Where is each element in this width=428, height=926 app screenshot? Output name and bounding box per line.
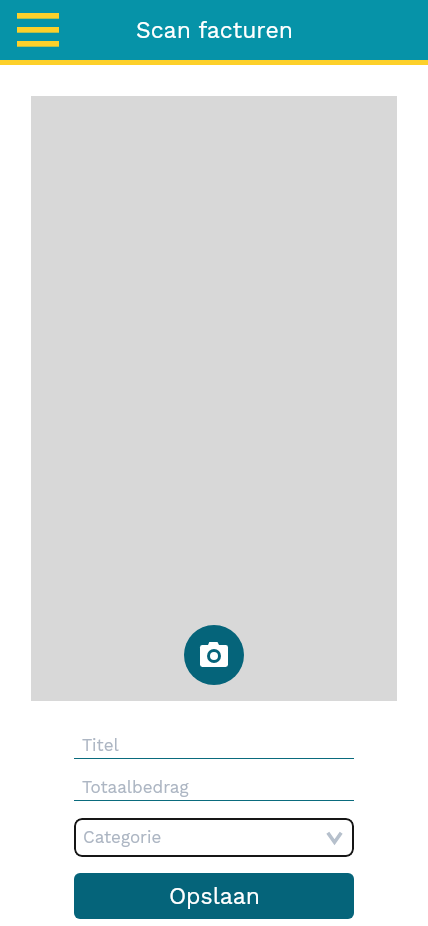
button[interactable]: Menu: [7, 2, 69, 58]
staticText: Totaalbedrag: [82, 777, 189, 797]
button[interactable]: Take photo: [184, 625, 244, 685]
staticText: Titel: [82, 735, 119, 755]
staticText: Opslaan: [169, 883, 260, 910]
button[interactable]: Titel: [74, 734, 354, 759]
button[interactable]: Totaalbedrag: [74, 776, 354, 801]
staticText: Scan facturen: [136, 17, 293, 44]
button[interactable]: Categorie: [74, 818, 354, 857]
staticText: Categorie: [83, 827, 162, 847]
button[interactable]: Opslaan: [74, 873, 354, 919]
